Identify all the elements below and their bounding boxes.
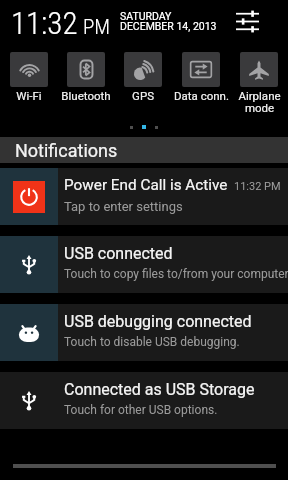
staticText: USB debugging connected: [64, 312, 252, 331]
staticText: USB connected: [64, 244, 173, 263]
button[interactable]: USB connected: [0, 236, 288, 293]
button[interactable]: Power End Call is Active: [0, 168, 288, 225]
staticText: 11:32 PM: [234, 180, 281, 193]
button[interactable]: Bluetooth: [57, 44, 114, 120]
button[interactable]: Connected as USB Storage: [0, 372, 288, 429]
staticText: Touch to disable USB debugging.: [64, 335, 240, 349]
staticText: PM: [83, 15, 111, 40]
staticText: Touch for other USB options.: [64, 403, 218, 417]
button[interactable]: Quick settings: [232, 6, 262, 36]
staticText: Bluetooth: [61, 89, 111, 102]
button[interactable]: Notifications: [0, 137, 288, 163]
staticText: Airplane mode: [238, 89, 281, 115]
staticText: GPS: [132, 89, 154, 102]
staticText: Data conn.: [174, 89, 229, 102]
button[interactable]: Wi-Fi: [0, 44, 57, 120]
staticText: 11:32: [11, 5, 78, 41]
staticText: Connected as USB Storage: [64, 380, 255, 399]
button[interactable]: Data conn.: [172, 44, 230, 120]
staticText: Touch to copy files to/from your compute…: [64, 267, 288, 281]
staticText: Power End Call is Active: [64, 176, 228, 194]
button[interactable]: Airplane mode: [230, 44, 288, 120]
staticText: SATURDAY: [120, 10, 172, 22]
button[interactable]: GPS: [114, 44, 172, 120]
button[interactable]: USB debugging connected: [0, 304, 288, 361]
staticText: DECEMBER 14, 2013: [120, 20, 217, 32]
staticText: Tap to enter settings: [64, 199, 183, 214]
staticText: Notifications: [15, 140, 118, 161]
staticText: Wi-Fi: [16, 89, 42, 102]
